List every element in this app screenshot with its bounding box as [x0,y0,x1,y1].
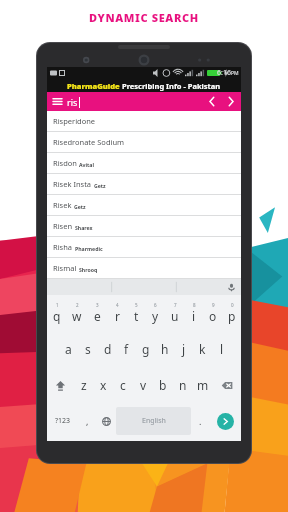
staticText: Shrooq [79,266,98,273]
staticText: e [94,308,101,324]
button[interactable]: 3 [87,295,107,331]
staticText: 4 [116,302,119,308]
staticText: b [159,377,167,393]
staticText: English [142,416,166,426]
button[interactable]: h [155,331,174,367]
button[interactable]: Backspace [213,367,241,403]
button[interactable]: Risperidone [47,111,241,131]
staticText: o [209,308,217,324]
staticText: ?123 [55,416,71,426]
button[interactable]: 7 [165,295,184,331]
button[interactable]: x [93,367,113,403]
button[interactable]: c [113,367,133,403]
button[interactable]: l [212,331,231,367]
button[interactable]: 0 [222,295,241,331]
staticText: j [182,341,186,357]
button[interactable]: n [173,367,193,403]
button[interactable]: ?123 [47,403,78,439]
button[interactable]: f [117,331,136,367]
staticText: t [134,308,139,324]
staticText: Risdon [53,158,77,168]
button[interactable]: Risek [47,195,241,215]
staticText: 3 [96,302,99,308]
staticText: PharmaGuide [67,81,120,91]
button[interactable]: Risek Insta [47,174,241,194]
button[interactable]: v [133,367,153,403]
button[interactable]: 8 [184,295,203,331]
staticText: Avital [79,161,95,168]
staticText: p [228,308,236,324]
staticText: 8 [193,302,196,308]
staticText: k [199,341,206,357]
staticText: z [81,377,87,393]
button[interactable]: Shift [47,367,74,403]
staticText: Risperidone [53,116,96,126]
button[interactable]: Rismal [47,258,241,278]
staticText: , [86,415,89,427]
staticText: x [100,377,107,393]
button[interactable]: 2 [67,295,87,331]
staticText: Getz [94,182,106,189]
button[interactable]: 5 [127,295,146,331]
staticText: 6 [154,302,157,308]
staticText: c [120,377,126,393]
staticText: ris [67,96,78,108]
staticText: l [220,341,224,357]
button[interactable]: . [191,403,210,439]
button[interactable]: Search [210,403,241,439]
button[interactable]: Risdon [47,153,241,173]
staticText: Risen [53,221,73,231]
button[interactable]: z [74,367,93,403]
button[interactable]: , [78,403,97,439]
staticText: 1 [56,302,59,308]
button[interactable]: English [116,407,191,435]
staticText: Risedronate Sodium [53,137,125,147]
staticText: Risek [53,200,72,210]
button[interactable]: 9 [203,295,222,331]
button[interactable]: Previous [203,92,221,111]
button[interactable]: s [78,331,98,367]
staticText: 9 [212,302,215,308]
staticText: v [140,377,147,393]
button[interactable]: 4 [107,295,127,331]
button[interactable]: j [174,331,193,367]
staticText: m [197,377,209,393]
staticText: d [104,341,112,357]
staticText: 6:16 [217,68,231,78]
staticText: DYNAMIC SEARCH [89,10,199,25]
staticText: w [72,308,82,324]
staticText: a [65,341,72,357]
staticText: n [179,377,187,393]
staticText: 7 [174,302,177,308]
button[interactable]: Risha [47,237,241,257]
button[interactable]: b [153,367,173,403]
button[interactable]: d [98,331,117,367]
button[interactable]: Voice input [221,279,241,295]
button[interactable]: 6 [146,295,165,331]
button[interactable]: Menu [47,92,67,111]
staticText: r [115,308,120,324]
staticText: h [161,341,169,357]
staticText: Pharmedic [75,245,103,252]
staticText: Rismal [53,263,77,273]
staticText: q [53,308,61,324]
button[interactable]: Next [221,92,241,111]
button[interactable]: Change language [97,403,116,439]
staticText: 2 [76,302,79,308]
button[interactable]: g [136,331,155,367]
staticText: y [152,308,159,324]
staticText: Prescribing Info - Pakistan [122,81,221,91]
staticText: 5 [135,302,138,308]
button[interactable]: Risedronate Sodium [47,132,241,152]
staticText: Risek Insta [53,179,92,189]
button[interactable]: 1 [47,295,67,331]
button[interactable]: m [193,367,213,403]
button[interactable]: a [58,331,78,367]
staticText: s [85,341,91,357]
staticText: Getz [74,203,86,210]
staticText: Sharex [75,224,93,231]
button[interactable]: Risen [47,216,241,236]
staticText: u [171,308,179,324]
staticText: 0 [231,302,234,308]
button[interactable]: k [193,331,212,367]
